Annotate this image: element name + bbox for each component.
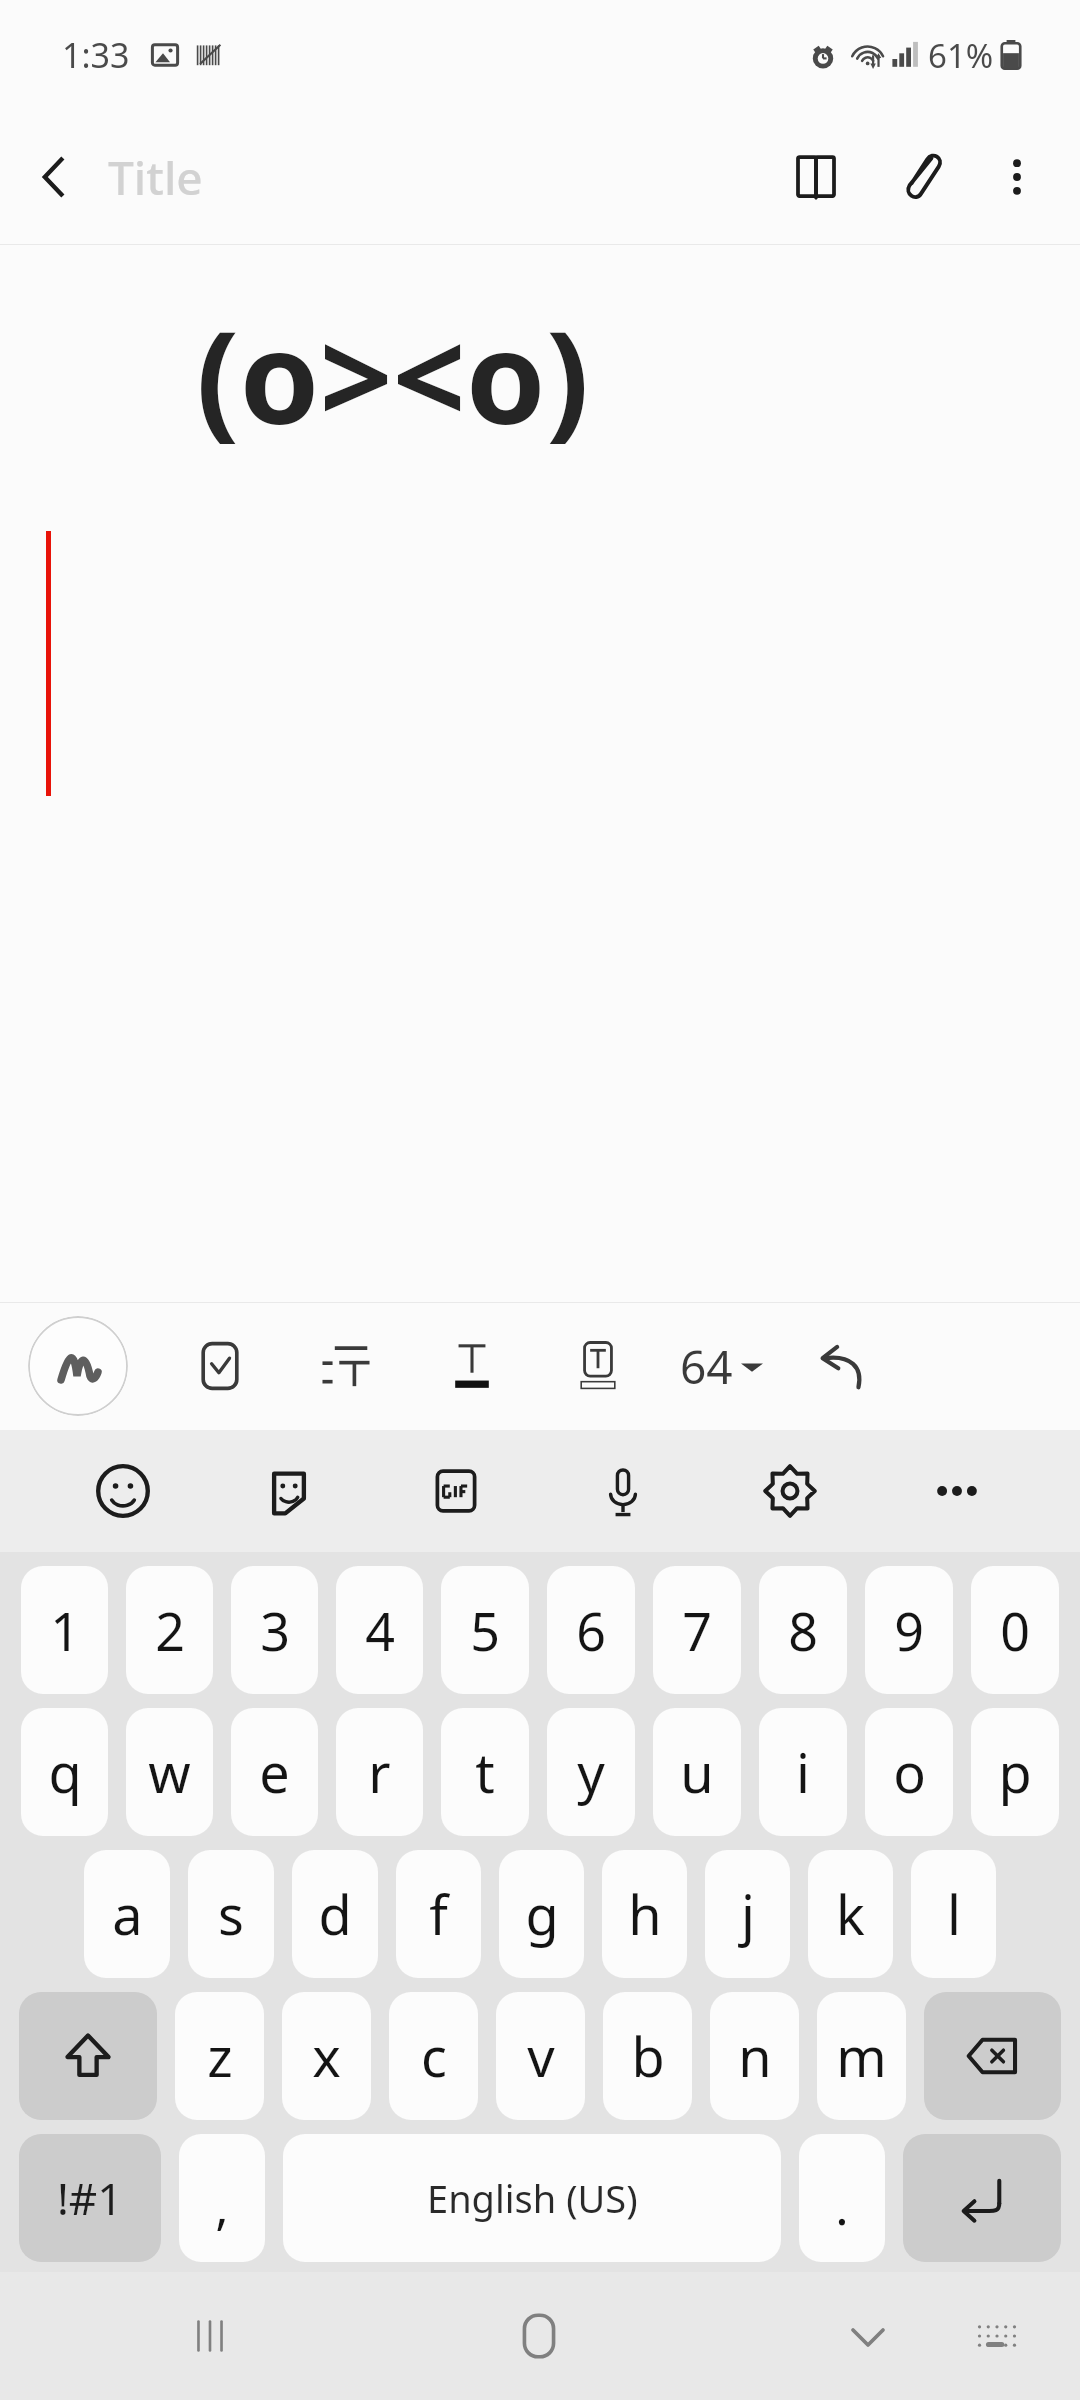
- button[interactable]: f: [396, 1850, 481, 1978]
- button[interactable]: 1: [21, 1566, 108, 1694]
- staticText: d: [318, 1877, 352, 1951]
- button[interactable]: u: [653, 1708, 741, 1836]
- button[interactable]: h: [602, 1850, 687, 1978]
- button[interactable]: Hide keyboard: [808, 2276, 928, 2396]
- button[interactable]: m: [817, 1992, 906, 2120]
- staticText: u: [680, 1735, 714, 1809]
- button[interactable]: 9: [865, 1566, 953, 1694]
- button[interactable]: Emoji: [40, 1430, 206, 1552]
- button[interactable]: r: [336, 1708, 423, 1836]
- staticText: 61%: [928, 33, 994, 78]
- button[interactable]: o: [865, 1708, 953, 1836]
- button[interactable]: a: [84, 1850, 170, 1978]
- button[interactable]: Stickers: [206, 1430, 372, 1552]
- button[interactable]: GIF: [372, 1430, 539, 1552]
- button[interactable]: p: [971, 1708, 1059, 1836]
- button[interactable]: Voice input: [539, 1430, 706, 1552]
- button[interactable]: Symbols: [19, 2134, 161, 2262]
- button[interactable]: b: [603, 1992, 692, 2120]
- button[interactable]: 64: [672, 1335, 771, 1398]
- staticText: 1: [50, 1595, 80, 1666]
- button[interactable]: g: [499, 1850, 584, 1978]
- button[interactable]: More options: [972, 132, 1062, 222]
- staticText: c: [421, 2019, 447, 2093]
- button[interactable]: n: [710, 1992, 799, 2120]
- button[interactable]: Checklist: [176, 1322, 264, 1410]
- button[interactable]: Switch keyboard: [942, 2281, 1052, 2391]
- button[interactable]: English (US): [283, 2134, 781, 2262]
- staticText: r: [368, 1735, 391, 1809]
- button[interactable]: y: [547, 1708, 635, 1836]
- staticText: 9: [894, 1595, 924, 1666]
- staticText: a: [112, 1877, 143, 1951]
- staticText: f: [429, 1877, 448, 1951]
- staticText: p: [998, 1735, 1032, 1809]
- staticText: English (US): [427, 2172, 638, 2224]
- button[interactable]: .: [799, 2134, 885, 2262]
- button[interactable]: w: [126, 1708, 213, 1836]
- button[interactable]: x: [282, 1992, 371, 2120]
- staticText: e: [259, 1735, 290, 1809]
- button[interactable]: c: [389, 1992, 478, 2120]
- staticText: 6: [576, 1595, 606, 1666]
- button[interactable]: t: [441, 1708, 529, 1836]
- staticText: 4: [365, 1595, 395, 1666]
- button[interactable]: d: [292, 1850, 378, 1978]
- staticText: m: [836, 2019, 887, 2093]
- button[interactable]: 0: [971, 1566, 1059, 1694]
- staticText: o: [893, 1735, 926, 1809]
- button[interactable]: Attach: [868, 125, 972, 229]
- staticText: 0: [1000, 1595, 1030, 1666]
- staticText: (o><o): [196, 287, 590, 461]
- staticText: 1:33: [62, 32, 130, 78]
- button[interactable]: Text highlight: [554, 1322, 642, 1410]
- button[interactable]: 6: [547, 1566, 635, 1694]
- button[interactable]: ,: [179, 2134, 265, 2262]
- staticText: 2: [155, 1595, 185, 1666]
- staticText: l: [947, 1877, 961, 1951]
- button[interactable]: Back: [0, 123, 108, 231]
- button[interactable]: s: [188, 1850, 274, 1978]
- button[interactable]: 8: [759, 1566, 847, 1694]
- staticText: j: [741, 1877, 755, 1951]
- button[interactable]: Shift: [19, 1992, 157, 2120]
- staticText: 64: [680, 1335, 733, 1398]
- button[interactable]: Text color: [428, 1322, 516, 1410]
- staticText: !#1: [57, 2168, 123, 2228]
- staticText: ,: [215, 2172, 229, 2240]
- button[interactable]: 2: [126, 1566, 213, 1694]
- button[interactable]: 5: [441, 1566, 529, 1694]
- button[interactable]: Home: [479, 2276, 599, 2396]
- button[interactable]: Backspace: [924, 1992, 1061, 2120]
- button[interactable]: j: [705, 1850, 790, 1978]
- button[interactable]: Paragraph style: [302, 1322, 390, 1410]
- button[interactable]: q: [21, 1708, 108, 1836]
- button[interactable]: Handwriting: [28, 1316, 128, 1416]
- button[interactable]: k: [808, 1850, 893, 1978]
- button[interactable]: 4: [336, 1566, 423, 1694]
- button[interactable]: 3: [231, 1566, 318, 1694]
- staticText: b: [631, 2019, 665, 2093]
- staticText: w: [148, 1735, 191, 1809]
- button[interactable]: e: [231, 1708, 318, 1836]
- staticText: x: [312, 2019, 341, 2093]
- button[interactable]: i: [759, 1708, 847, 1836]
- button[interactable]: More: [873, 1430, 1040, 1552]
- button[interactable]: Title: [108, 146, 203, 209]
- staticText: 8: [788, 1595, 818, 1666]
- staticText: 7: [682, 1595, 712, 1666]
- button[interactable]: l: [911, 1850, 996, 1978]
- button[interactable]: (o><o): [0, 245, 1080, 1302]
- staticText: q: [48, 1735, 82, 1809]
- staticText: y: [577, 1735, 605, 1809]
- button[interactable]: Reading mode: [764, 125, 868, 229]
- staticText: k: [836, 1877, 865, 1951]
- button[interactable]: Keyboard settings: [706, 1430, 873, 1552]
- button[interactable]: Recents: [150, 2276, 270, 2396]
- button[interactable]: 7: [653, 1566, 741, 1694]
- staticText: 3: [260, 1595, 290, 1666]
- button[interactable]: Undo: [801, 1322, 889, 1410]
- button[interactable]: v: [496, 1992, 585, 2120]
- button[interactable]: z: [175, 1992, 264, 2120]
- button[interactable]: Enter: [903, 2134, 1061, 2262]
